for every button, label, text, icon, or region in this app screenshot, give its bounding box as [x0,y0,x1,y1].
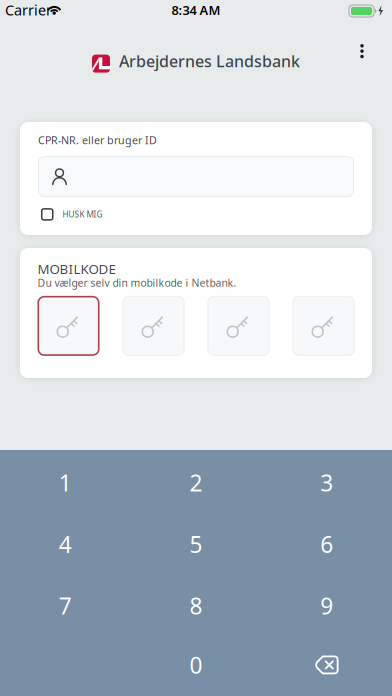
staticText: 8 [189,591,202,621]
button[interactable]: 0 [131,634,261,696]
button[interactable]: Mobilkode ciffer [37,296,99,356]
staticText: 6 [320,529,333,559]
button[interactable]: Mobilkode ciffer [207,296,269,356]
staticText: 9 [320,591,333,621]
button[interactable]: 8 [131,575,261,636]
staticText: 7 [59,591,72,621]
staticText: 2 [189,468,202,498]
button[interactable]: 3 [261,452,392,513]
staticText: 0 [189,650,202,680]
button[interactable]: CPR-NR. eller bruger ID [38,156,354,197]
staticText: 5 [189,529,202,559]
staticText: 3 [320,468,333,498]
staticText: Du vælger selv din mobilkode i Netbank. [37,276,236,290]
staticText: HUSK MIG [62,209,102,220]
staticText: CPR-NR. eller bruger ID [38,133,157,147]
button[interactable]: 6 [261,513,392,575]
staticText: 8:34 AM [171,1,220,19]
staticText: 4 [59,529,72,559]
button[interactable]: Mobilkode ciffer [292,296,354,356]
button[interactable]: Menu [360,20,392,59]
staticText: MOBILKODE [37,260,115,278]
button[interactable]: Husk mig [41,208,102,221]
button[interactable]: 4 [0,513,131,575]
button[interactable]: Mobilkode ciffer [122,296,184,356]
button[interactable]: 7 [0,575,131,636]
staticText: Arbejdernes Landsbank [119,50,300,72]
button[interactable]: 1 [0,452,131,513]
button[interactable]: 9 [261,575,392,636]
button[interactable]: 2 [131,452,261,513]
staticText: 1 [59,468,72,498]
staticText: Carrier [5,0,52,20]
button[interactable]: 5 [131,513,261,575]
button[interactable]: Slet [261,634,392,696]
